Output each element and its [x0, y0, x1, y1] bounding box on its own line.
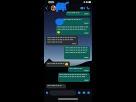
- button[interactable]: Voice call: [86, 4, 92, 12]
- button[interactable]: Camera: [82, 90, 87, 96]
- button[interactable]: Emoji: [45, 90, 49, 96]
- button[interactable]: Video call: [79, 4, 86, 12]
- button[interactable]: [49, 90, 76, 96]
- button[interactable]: Attach: [77, 90, 82, 96]
- button[interactable]: Voice message: [87, 90, 92, 96]
- button[interactable]: Back: [44, 4, 50, 12]
- button[interactable]: Contact profile: [50, 4, 78, 12]
